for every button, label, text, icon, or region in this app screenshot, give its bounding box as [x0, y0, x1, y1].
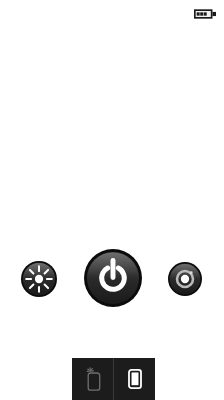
- button[interactable]: Brightness: [21, 261, 57, 297]
- button[interactable]: Screen: [114, 358, 155, 400]
- button[interactable]: Power: [84, 249, 142, 307]
- button[interactable]: Power saving: [168, 262, 202, 296]
- other: Battery status: [194, 8, 216, 20]
- button[interactable]: Flashlight: [72, 358, 113, 400]
